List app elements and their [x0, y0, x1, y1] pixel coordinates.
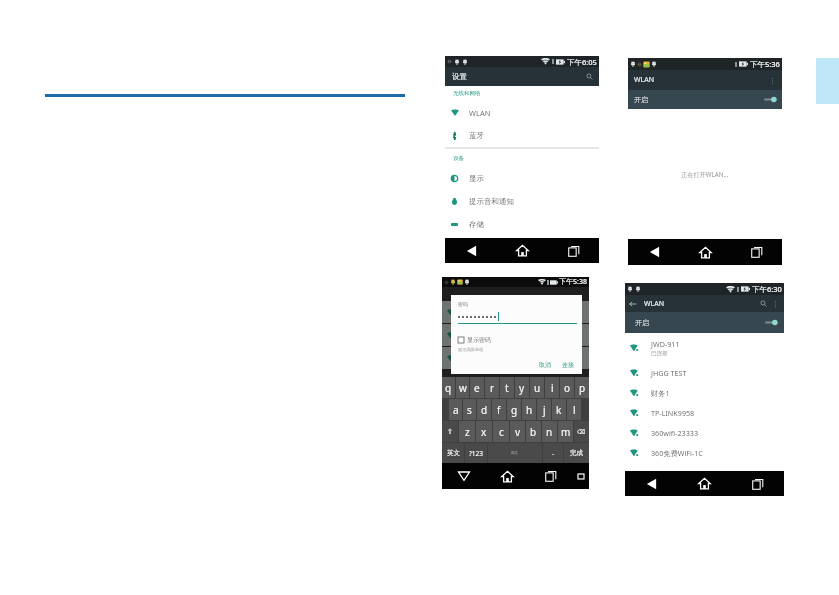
button[interactable]: c [493, 421, 509, 442]
staticText: 蓝牙 [469, 131, 484, 140]
button[interactable]: Search [585, 72, 594, 81]
staticText: 已连接 [651, 350, 668, 357]
staticText: JHGG TEST [651, 368, 687, 378]
staticText: i [551, 381, 554, 395]
staticText: t [505, 381, 509, 395]
button[interactable]: JWD-911 [625, 333, 784, 363]
button[interactable]: 取消 [536, 360, 554, 370]
staticText: r [490, 381, 495, 395]
button[interactable]: TP-LINK9958 [625, 403, 784, 423]
staticText: c [499, 425, 504, 439]
button[interactable]: g [507, 399, 521, 420]
button[interactable]: a [449, 399, 462, 420]
button[interactable]: More options [768, 76, 777, 85]
button[interactable]: Back [445, 238, 497, 263]
button[interactable]: Recents [529, 463, 573, 489]
button[interactable]: q [442, 377, 455, 398]
button[interactable]: Home [680, 239, 731, 265]
staticText: - [552, 449, 555, 458]
button[interactable]: 开启 [628, 90, 782, 109]
button[interactable]: - [543, 443, 563, 463]
staticText: 下午6:30 [752, 284, 782, 294]
button[interactable]: t [500, 377, 514, 398]
staticText: y [519, 381, 525, 395]
staticText: 开启 [635, 318, 649, 327]
button[interactable]: Recents [731, 239, 782, 265]
staticText: q [445, 381, 452, 395]
staticText: 下午5:38 [559, 277, 587, 287]
button[interactable]: u [530, 377, 544, 398]
button[interactable]: Back [628, 239, 680, 265]
staticText: 下午6:05 [567, 57, 597, 67]
button[interactable]: l [567, 399, 581, 420]
button[interactable]: o [560, 377, 574, 398]
button[interactable]: b [526, 421, 541, 442]
button[interactable]: 360wifi-23333 [625, 423, 784, 443]
staticText: ⌫ [577, 428, 586, 435]
button[interactable]: Switch input method [573, 463, 589, 489]
button[interactable]: e [470, 377, 484, 398]
button[interactable]: More options [771, 299, 780, 308]
button[interactable]: y [515, 377, 529, 398]
button[interactable]: d [477, 399, 491, 420]
staticText: j [543, 403, 546, 417]
staticText: b [530, 425, 537, 439]
button[interactable]: Back [625, 471, 678, 496]
button[interactable]: ?123 [465, 443, 487, 463]
button[interactable]: Home [485, 463, 529, 489]
button[interactable]: 显示 [445, 167, 599, 190]
staticText: ⇧ [447, 428, 453, 436]
staticText: m [561, 425, 571, 439]
button[interactable]: Home [497, 238, 548, 263]
button[interactable]: j [537, 399, 551, 420]
staticText: TP-LINK9958 [651, 408, 695, 418]
button[interactable]: v [510, 421, 525, 442]
staticText: 下午5:36 [750, 59, 780, 69]
button[interactable]: h [522, 399, 536, 420]
button[interactable]: 提示音和通知 [445, 190, 599, 213]
button[interactable]: s [463, 399, 476, 420]
staticText: k [556, 403, 562, 417]
staticText: 取消 [539, 361, 551, 369]
button[interactable]: 存储 [445, 213, 599, 236]
button[interactable]: 开启 [625, 312, 784, 333]
button[interactable]: p [575, 377, 589, 398]
staticText: JWD-911 [651, 339, 680, 349]
button[interactable]: i [545, 377, 559, 398]
button[interactable]: f [492, 399, 506, 420]
button[interactable]: 360免费WiFi-1C [625, 443, 784, 463]
button[interactable]: 财务1 [625, 383, 784, 403]
staticText: 显示密码 [467, 336, 491, 344]
staticText: 正在打开WLAN... [681, 170, 729, 178]
button[interactable]: 连接 [559, 360, 577, 370]
staticText: 英文 [511, 451, 519, 456]
button[interactable]: 英文 [442, 443, 464, 463]
button[interactable]: ⌫ [574, 421, 589, 442]
button[interactable]: k [552, 399, 566, 420]
button[interactable]: z [459, 421, 475, 442]
button[interactable]: Back [442, 463, 485, 489]
button[interactable]: Home [678, 471, 731, 496]
button[interactable]: JHGG TEST [625, 363, 784, 383]
button[interactable]: n [542, 421, 557, 442]
staticText: o [564, 381, 571, 395]
button[interactable]: Recents [548, 238, 599, 263]
staticText: p [579, 381, 586, 395]
button[interactable]: 英文 [488, 443, 542, 463]
button[interactable]: w [456, 377, 469, 398]
button[interactable]: x [476, 421, 492, 442]
button[interactable]: WLAN [445, 101, 599, 124]
staticText: h [526, 403, 533, 417]
button[interactable]: 蓝牙 [445, 124, 599, 147]
button[interactable]: m [558, 421, 573, 442]
staticText: 开启 [634, 95, 648, 104]
button[interactable]: Search [759, 299, 768, 308]
button[interactable]: Navigate up [628, 299, 638, 309]
button[interactable]: Recents [731, 471, 784, 496]
button[interactable]: r [485, 377, 499, 398]
staticText: v [515, 425, 521, 439]
button[interactable]: 完成 [564, 443, 589, 463]
button[interactable]: ⇧ [442, 421, 458, 442]
staticText: g [511, 403, 518, 417]
staticText: 360wifi-23333 [651, 428, 699, 438]
